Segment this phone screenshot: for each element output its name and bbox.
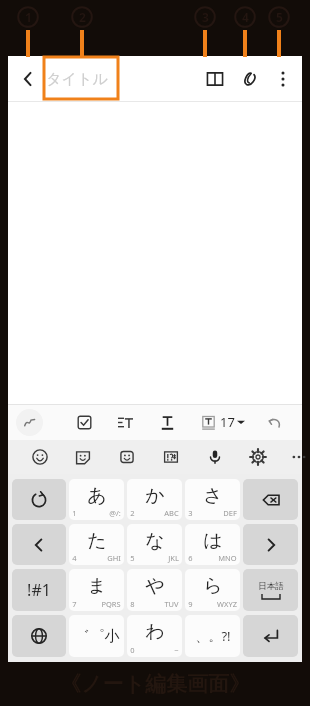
- button[interactable]: Sticker: [68, 442, 98, 472]
- button[interactable]: space: [243, 569, 298, 611]
- staticText: GHI: [107, 553, 121, 563]
- staticText: や: [145, 574, 165, 598]
- button[interactable]: Book view: [198, 62, 232, 96]
- button[interactable]: 、。?!: [185, 615, 240, 657]
- staticText: 1: [72, 508, 77, 518]
- button[interactable]: Checklist: [70, 408, 98, 436]
- button[interactable]: か: [127, 479, 182, 520]
- button[interactable]: ら: [185, 569, 240, 611]
- staticText: 4: [72, 553, 77, 563]
- button[interactable]: Emoticon: [112, 442, 142, 472]
- button[interactable]: わ: [127, 615, 182, 657]
- button[interactable]: Symbols: [156, 442, 186, 472]
- button[interactable]: た: [69, 524, 124, 565]
- staticText: 0: [130, 645, 135, 655]
- button[interactable]: !#1: [12, 569, 66, 611]
- button[interactable]: Voice input: [200, 442, 230, 472]
- button[interactable]: right: [243, 524, 298, 565]
- staticText: 1: [25, 9, 32, 25]
- staticText: な: [145, 529, 165, 553]
- button[interactable]: タイトル: [46, 64, 108, 94]
- staticText: 5: [276, 9, 283, 25]
- button[interactable]: Text box: [194, 408, 222, 436]
- staticText: ゛゜小: [74, 627, 120, 646]
- staticText: ま: [87, 574, 107, 598]
- staticText: PQRS: [101, 599, 121, 609]
- staticText: さ: [203, 484, 223, 508]
- staticText: 3: [188, 508, 193, 518]
- staticText: あ: [87, 484, 107, 508]
- button[interactable]: な: [127, 524, 182, 565]
- button[interactable]: ま: [69, 569, 124, 611]
- staticText: 日本語: [258, 581, 284, 592]
- button[interactable]: Attach: [232, 62, 266, 96]
- button[interactable]: Underline T: [153, 408, 181, 436]
- staticText: ABC: [164, 508, 179, 518]
- staticText: WXYZ: [217, 599, 237, 609]
- button[interactable]: は: [185, 524, 240, 565]
- staticText: 9: [188, 599, 193, 609]
- button[interactable]: さ: [185, 479, 240, 520]
- staticText: TUV: [164, 599, 179, 609]
- staticText: 2: [130, 508, 135, 518]
- staticText: 17: [220, 413, 235, 431]
- staticText: 《ノート編集画面》: [60, 671, 250, 697]
- button[interactable]: del: [243, 479, 298, 520]
- button[interactable]: More options: [266, 62, 300, 96]
- staticText: 、。?!: [195, 627, 231, 645]
- staticText: か: [145, 484, 165, 508]
- button[interactable]: Keyboard settings: [243, 442, 273, 472]
- staticText: @/:: [109, 508, 121, 518]
- staticText: 7: [72, 599, 77, 609]
- staticText: 2: [79, 9, 86, 25]
- button[interactable]: enter: [243, 615, 298, 657]
- button[interactable]: More: [284, 442, 310, 472]
- button[interactable]: ゛゜小: [69, 615, 124, 657]
- button[interactable]: Undo: [260, 408, 288, 436]
- staticText: ら: [203, 574, 223, 598]
- button[interactable]: left: [12, 524, 66, 565]
- button[interactable]: Indent: [111, 408, 139, 436]
- staticText: は: [203, 529, 223, 553]
- staticText: −: [174, 645, 179, 655]
- button[interactable]: Back: [10, 61, 46, 97]
- button[interactable]: あ: [69, 479, 124, 520]
- staticText: 5: [130, 553, 135, 563]
- staticText: 6: [188, 553, 193, 563]
- staticText: 4: [242, 9, 249, 25]
- staticText: 8: [130, 599, 135, 609]
- button[interactable]: や: [127, 569, 182, 611]
- button[interactable]: Emoji: [25, 442, 55, 472]
- button[interactable]: 17: [220, 408, 245, 436]
- button[interactable]: redo: [12, 479, 66, 520]
- staticText: JKL: [168, 553, 179, 563]
- staticText: タイトル: [46, 70, 108, 89]
- staticText: 3: [202, 9, 209, 25]
- staticText: DEF: [223, 508, 237, 518]
- staticText: わ: [145, 620, 165, 644]
- button[interactable]: globe: [12, 615, 66, 657]
- staticText: MNO: [218, 553, 237, 563]
- staticText: !#1: [27, 579, 51, 601]
- button[interactable]: Pen: [16, 409, 43, 436]
- staticText: た: [87, 529, 107, 553]
